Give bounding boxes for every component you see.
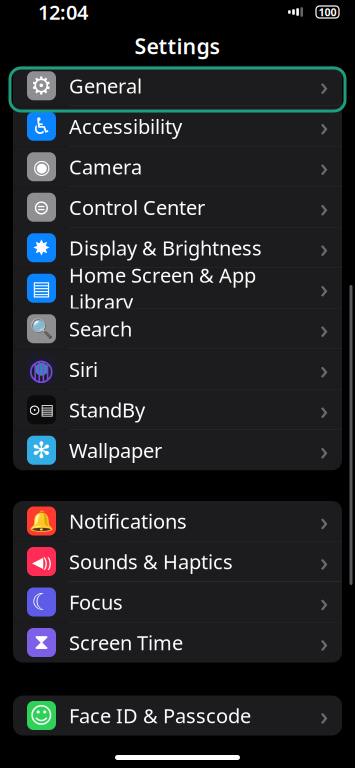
button[interactable]: ⊜ xyxy=(13,187,342,228)
staticText: ⚙ xyxy=(30,72,52,99)
staticText: › xyxy=(320,393,328,426)
staticText: ☾ xyxy=(31,589,51,615)
button[interactable]: ⊙▤ xyxy=(13,390,342,430)
staticText: 🔍 xyxy=(30,318,53,339)
staticText: ✸ xyxy=(32,236,50,260)
button[interactable]: 🔍 xyxy=(13,309,342,349)
button[interactable]: ♿︎ xyxy=(13,106,342,147)
staticText: ◉ xyxy=(33,155,50,178)
button[interactable]: ☾ xyxy=(13,582,342,622)
button[interactable]: ⧗ xyxy=(13,622,342,662)
staticText: › xyxy=(320,231,328,264)
staticText: StandBy xyxy=(69,396,145,423)
staticText: Face ID & Passcode xyxy=(69,702,251,729)
staticText: Siri xyxy=(69,356,98,383)
staticText: 100 xyxy=(318,5,336,19)
staticText: Settings xyxy=(134,32,220,60)
button[interactable]: 🔔 xyxy=(13,501,342,541)
staticText: Search xyxy=(69,315,132,342)
staticText: 🔔 xyxy=(29,510,54,532)
staticText: Camera xyxy=(69,153,142,180)
button[interactable]: ✻ xyxy=(13,430,342,470)
staticText: Focus xyxy=(69,589,123,615)
staticText: Accessibility xyxy=(69,113,182,140)
staticText: › xyxy=(320,271,328,305)
staticText: › xyxy=(320,699,328,732)
button[interactable]: ⚙ xyxy=(13,66,342,106)
staticText: › xyxy=(320,352,328,386)
staticText: General xyxy=(69,72,142,99)
staticText: Sounds & Haptics xyxy=(69,548,233,575)
staticText: › xyxy=(320,69,328,102)
staticText: ☺ xyxy=(29,703,53,728)
staticText: › xyxy=(320,190,328,224)
staticText: Home Screen & App Library xyxy=(69,262,256,315)
staticText: › xyxy=(320,504,328,538)
staticText: Notifications xyxy=(69,508,187,534)
staticText: › xyxy=(320,150,328,183)
staticText: Screen Time xyxy=(69,629,183,656)
button[interactable]: ✸ xyxy=(13,228,342,268)
staticText: ◍ xyxy=(28,353,54,386)
button[interactable]: ▤ xyxy=(13,268,342,309)
staticText: ▤ xyxy=(32,277,51,300)
staticText: › xyxy=(320,585,328,619)
staticText: ♿︎ xyxy=(31,113,51,139)
staticText: Display & Brightness xyxy=(69,234,262,261)
button[interactable]: ◍ xyxy=(13,349,342,390)
staticText: Wallpaper xyxy=(69,437,162,464)
staticText: › xyxy=(320,626,328,659)
button[interactable]: ◉ xyxy=(13,147,342,187)
staticText: › xyxy=(320,545,328,578)
staticText: ⧗ xyxy=(34,632,49,653)
button[interactable]: ☺ xyxy=(13,695,342,735)
staticText: 12:04 xyxy=(38,0,88,25)
staticText: Control Center xyxy=(69,194,205,221)
staticText: › xyxy=(320,312,328,345)
button[interactable]: ◀)) xyxy=(13,541,342,582)
staticText: ◀)) xyxy=(32,552,51,571)
staticText: ✻ xyxy=(32,437,51,463)
staticText: ⊜ xyxy=(33,196,50,219)
staticText: › xyxy=(320,109,328,143)
staticText: ⊙▤ xyxy=(28,401,54,418)
staticText: › xyxy=(320,433,328,467)
